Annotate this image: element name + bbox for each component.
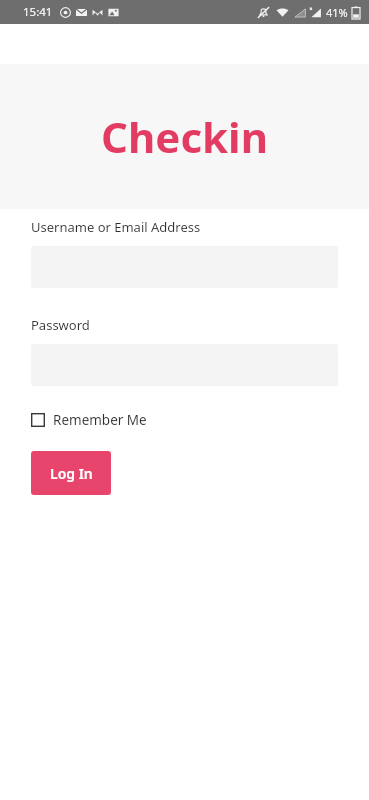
staticText: Log In	[50, 464, 93, 483]
staticText: Username or Email Address	[31, 218, 201, 236]
staticText: Password	[31, 316, 90, 334]
staticText: Remember Me	[53, 411, 147, 429]
staticText: 41%	[326, 5, 348, 20]
staticText: Checkin	[101, 108, 268, 165]
button[interactable]: Log In	[31, 451, 111, 495]
button[interactable]: Remember Me	[31, 411, 147, 429]
staticText: 15:41	[23, 4, 53, 20]
